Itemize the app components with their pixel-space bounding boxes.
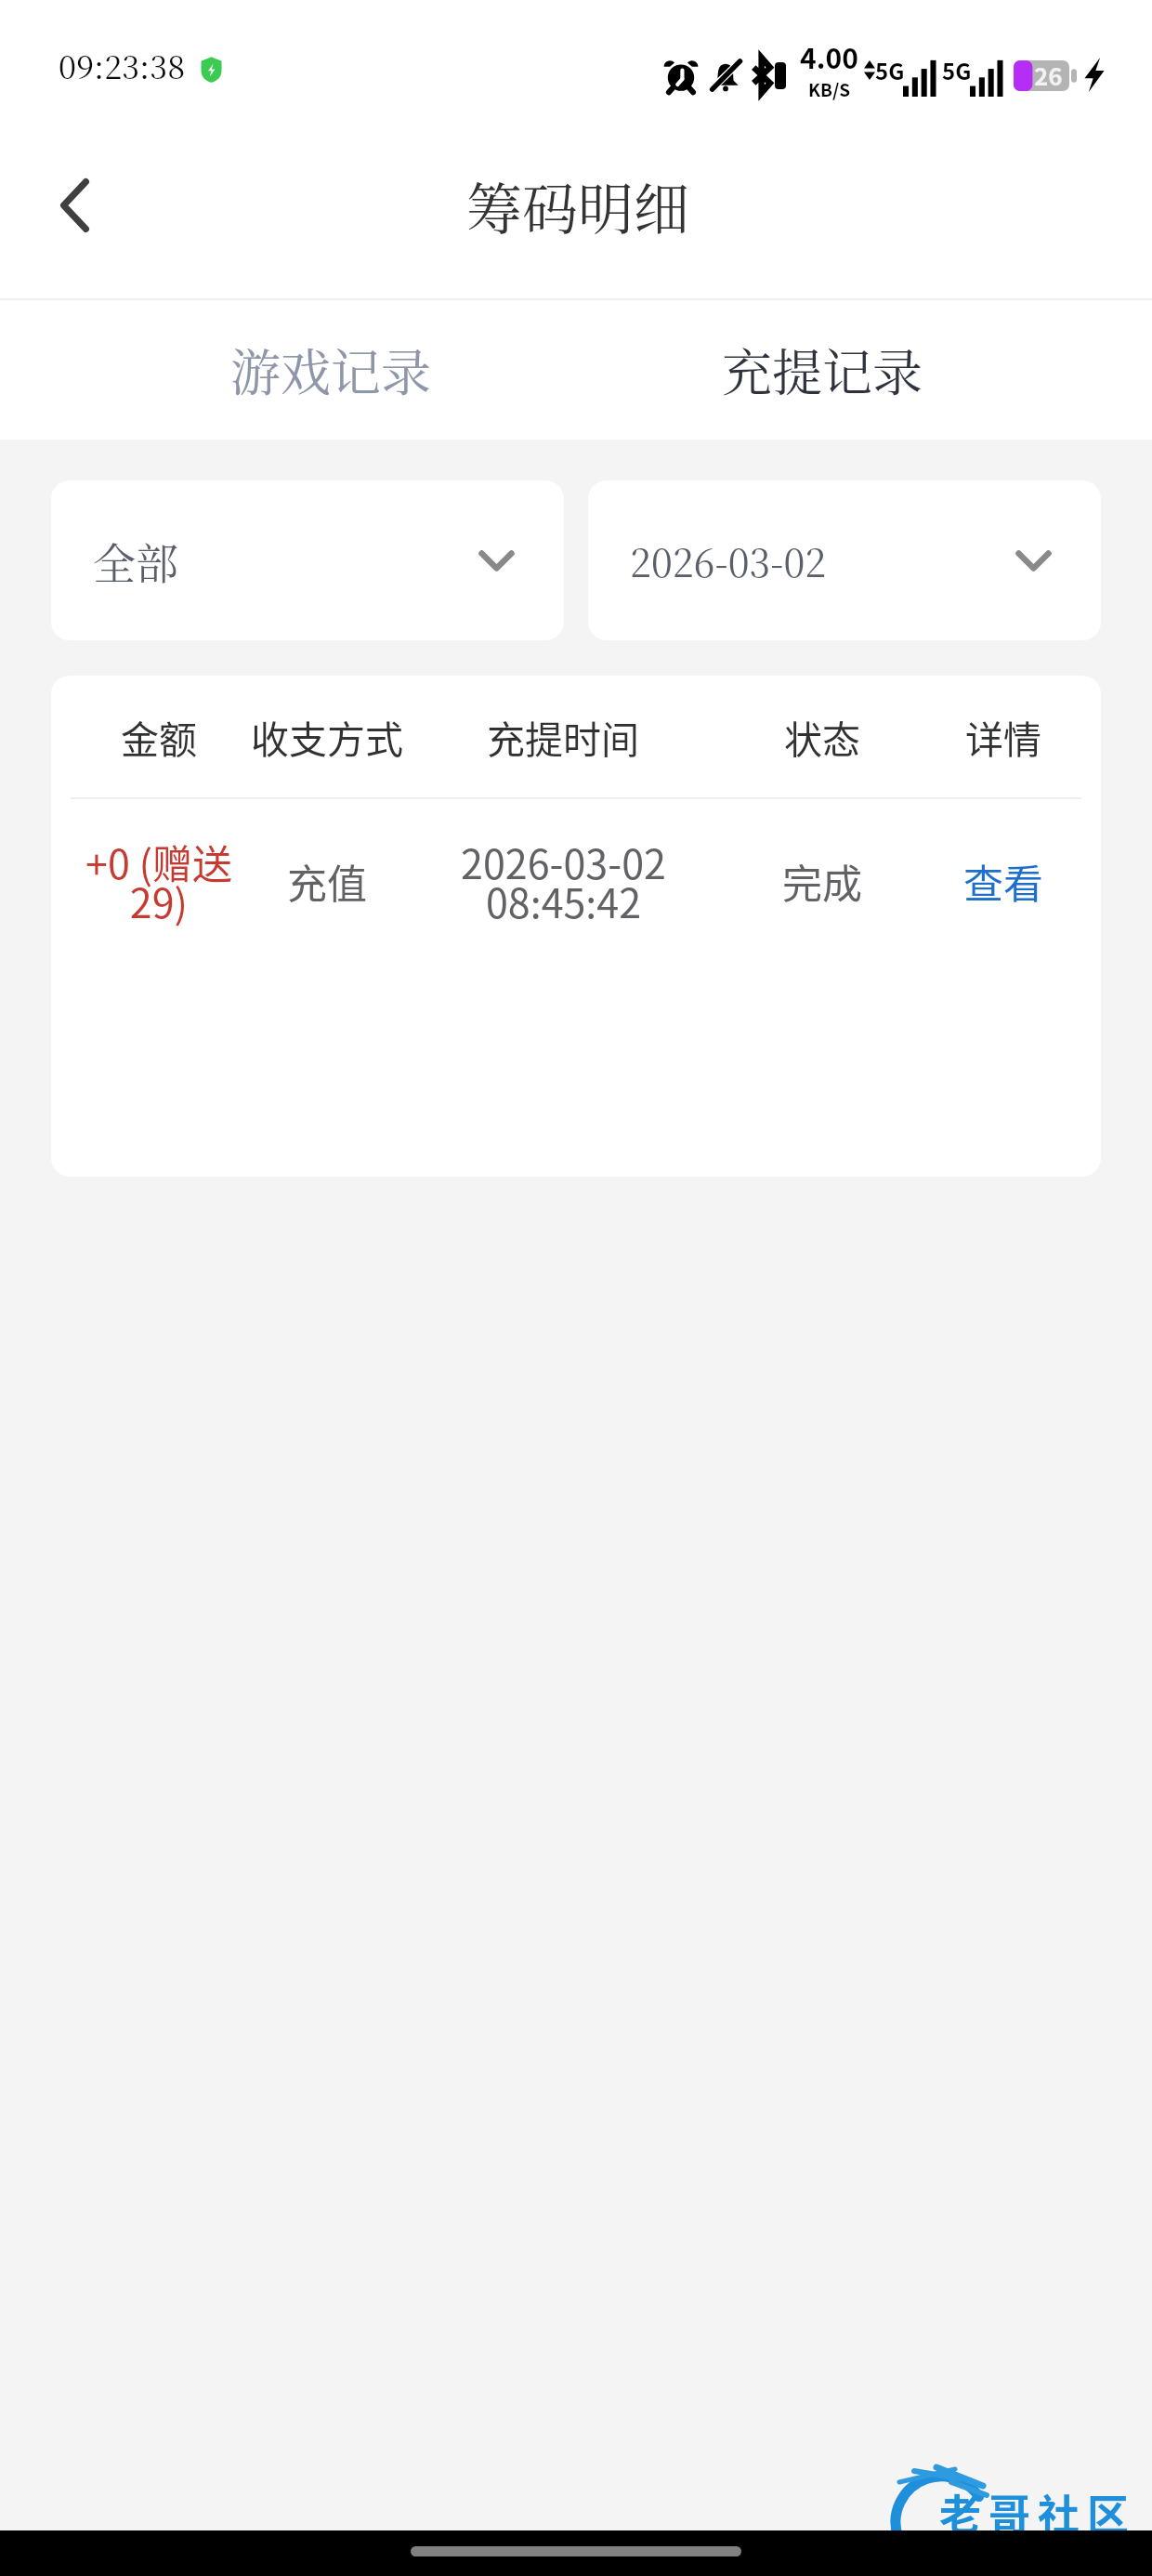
staticText: 金额 <box>121 709 197 764</box>
staticText: 2026-03-02 08:45:42 <box>461 833 666 929</box>
staticText: +0 (赠送 29) <box>75 833 242 929</box>
staticText: LAOGESHEQU <box>979 2530 1132 2556</box>
button[interactable]: 查看 <box>910 799 1096 963</box>
staticText: 09:23:38 <box>59 43 186 88</box>
staticText: 充提时间 <box>487 709 639 764</box>
button[interactable]: 2026-03-02 <box>588 480 1101 640</box>
staticText: 游戏记录 <box>230 334 431 406</box>
button[interactable]: Back <box>28 159 121 252</box>
staticText: 全部 <box>93 530 178 591</box>
button[interactable]: 充提记录 <box>576 300 1152 440</box>
staticText: 完成 <box>782 852 862 910</box>
staticText: 5G <box>942 54 972 86</box>
button[interactable]: +0 (赠送 29) <box>51 799 1101 963</box>
staticText: 状态 <box>784 709 860 764</box>
staticText: 充值 <box>287 852 367 910</box>
staticText: 筹码明细 <box>466 165 689 245</box>
button[interactable]: 全部 <box>51 480 564 640</box>
button[interactable]: 游戏记录 <box>0 300 576 440</box>
staticText: 5G <box>875 54 905 86</box>
staticText: KB/S <box>808 76 851 102</box>
staticText: 详情 <box>965 709 1041 764</box>
staticText: 26 <box>1034 58 1063 93</box>
staticText: 查看 <box>963 852 1043 910</box>
staticText: 2026-03-02 <box>630 533 827 588</box>
staticText: 老哥社区 <box>939 2482 1137 2543</box>
staticText: 4.00 <box>800 36 858 76</box>
staticText: 充提记录 <box>722 334 923 406</box>
staticText: 收支方式 <box>251 709 403 764</box>
